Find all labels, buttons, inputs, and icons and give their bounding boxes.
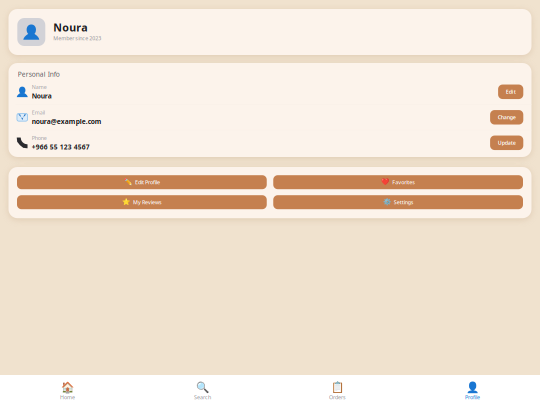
button[interactable]: ✏️ (17, 175, 267, 189)
button[interactable]: 📋 (270, 381, 405, 401)
staticText: Favorites (392, 179, 415, 186)
staticText: Phone (32, 134, 47, 141)
button[interactable]: 🏠 (0, 381, 135, 401)
staticText: Noura (32, 91, 52, 100)
staticText: ❤️ (381, 178, 389, 186)
staticText: 📋 (331, 381, 344, 394)
staticText: Search (194, 394, 211, 401)
staticText: Profile (465, 394, 480, 401)
button[interactable]: Change (490, 110, 523, 124)
button[interactable]: 👤 (405, 381, 540, 401)
staticText: Member since 2023 (53, 34, 101, 42)
staticText: 🏠 (61, 381, 74, 394)
staticText: Name (32, 83, 47, 90)
staticText: Change (498, 114, 516, 121)
staticText: Personal Info (18, 70, 60, 79)
staticText: Email (32, 109, 45, 116)
staticText: 👤 (466, 381, 479, 394)
button[interactable]: 🔍 (135, 381, 270, 401)
button[interactable]: Update (490, 136, 523, 150)
staticText: Settings (394, 199, 414, 206)
staticText: My Reviews (133, 199, 162, 206)
staticText: +966 55 123 4567 (32, 142, 90, 151)
button[interactable]: Edit (498, 84, 523, 99)
staticText: Edit Profile (135, 179, 160, 186)
staticText: ⚙️ (383, 198, 391, 206)
staticText: noura@example.com (32, 117, 102, 126)
staticText: Noura (53, 20, 87, 35)
staticText: Edit (506, 88, 516, 95)
staticText: ⭐ (122, 198, 130, 206)
staticText: Orders (329, 394, 346, 401)
button[interactable]: ⭐ (17, 195, 267, 209)
staticText: ✏️ (124, 178, 132, 186)
staticText: 🔍 (196, 381, 209, 394)
staticText: Home (60, 394, 75, 401)
button[interactable]: ❤️ (273, 175, 523, 189)
staticText: Update (498, 139, 516, 146)
button[interactable]: ⚙️ (273, 195, 523, 209)
